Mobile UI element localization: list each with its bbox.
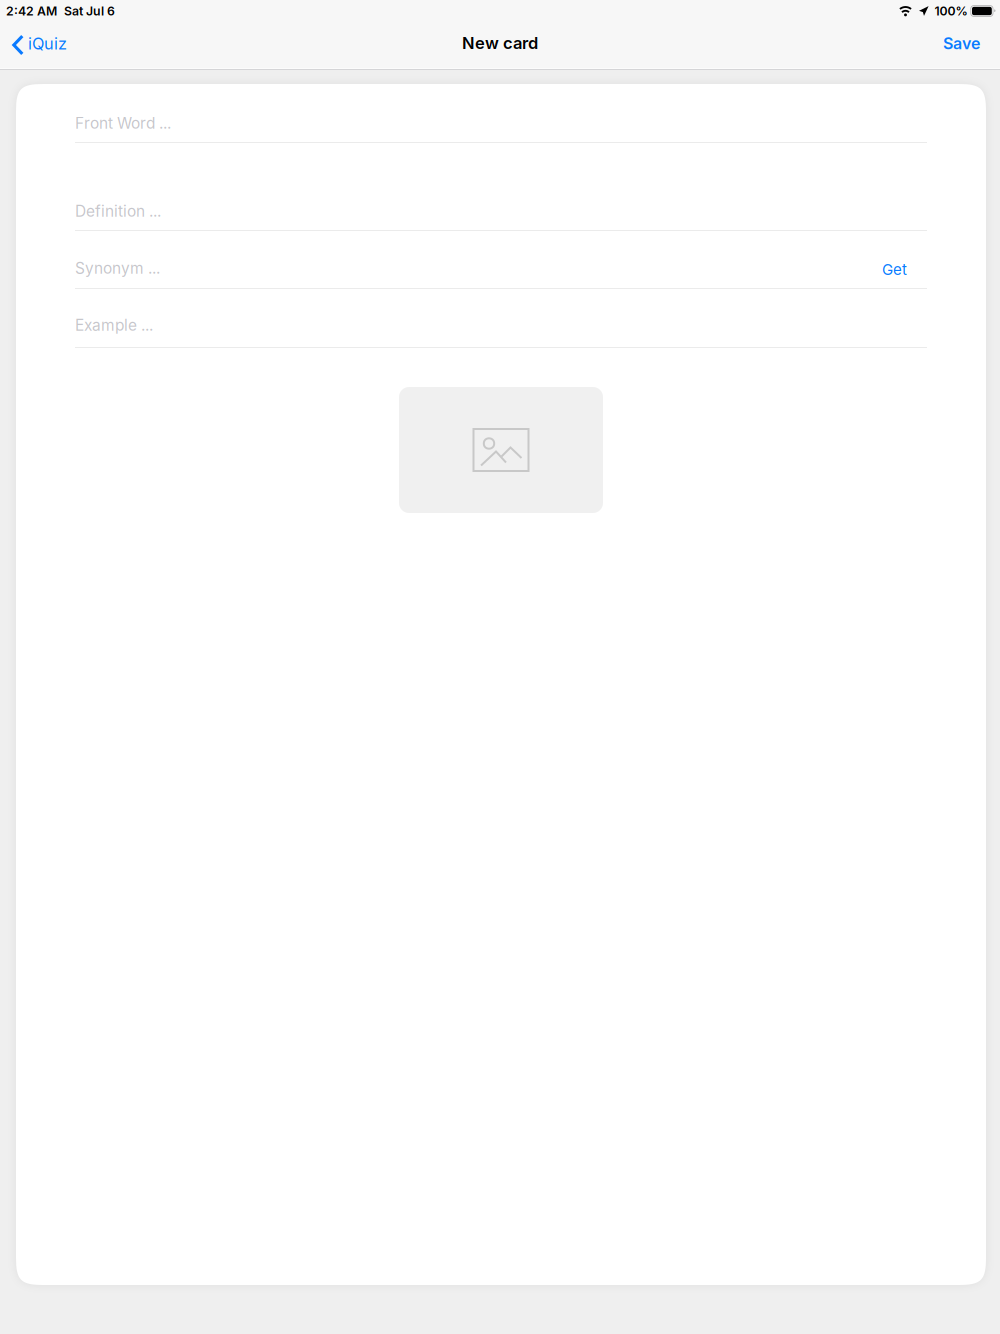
staticText: 100% (934, 4, 967, 18)
staticText: Get (882, 260, 907, 279)
button[interactable]: Synonym ... (75, 257, 845, 289)
button[interactable]: Example ... (75, 314, 927, 348)
staticText: Save (943, 34, 980, 53)
staticText: 2:42 AM (6, 4, 57, 18)
staticText: Example ... (75, 316, 153, 334)
staticText: Sat Jul 6 (64, 4, 115, 18)
staticText: iQuiz (28, 34, 67, 53)
staticText: Definition ... (75, 202, 161, 220)
button[interactable]: Add image (399, 387, 603, 513)
staticText: Front Word ... (75, 114, 171, 132)
button[interactable]: Get (845, 257, 927, 289)
staticText: New card (462, 33, 538, 53)
button[interactable]: Save (925, 22, 1000, 68)
button[interactable]: Front Word ... (75, 112, 927, 143)
staticText: Synonym ... (75, 259, 160, 277)
button[interactable]: Definition ... (75, 200, 927, 231)
button[interactable]: iQuiz (0, 22, 81, 68)
